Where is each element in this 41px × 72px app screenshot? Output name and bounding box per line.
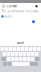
button[interactable]: Contact <box>0 4 17 8</box>
button[interactable]: Key <box>4 47 8 51</box>
button[interactable]: Key <box>2 52 6 56</box>
button[interactable]: Key <box>8 62 11 66</box>
staticText: The quick brown fox jumps <box>1 9 38 13</box>
button[interactable]: Key <box>3 62 7 66</box>
button[interactable]: Key <box>37 47 40 51</box>
button[interactable]: Key <box>35 52 38 56</box>
staticText: Contact <box>7 4 17 8</box>
button[interactable]: Key <box>0 47 4 51</box>
staticText: audio <box>5 15 13 18</box>
staticText: word <box>17 41 24 45</box>
button[interactable]: Key <box>12 62 30 66</box>
button[interactable]: Key <box>35 57 39 61</box>
button[interactable]: More <box>35 5 41 7</box>
button[interactable]: Key <box>30 62 38 66</box>
